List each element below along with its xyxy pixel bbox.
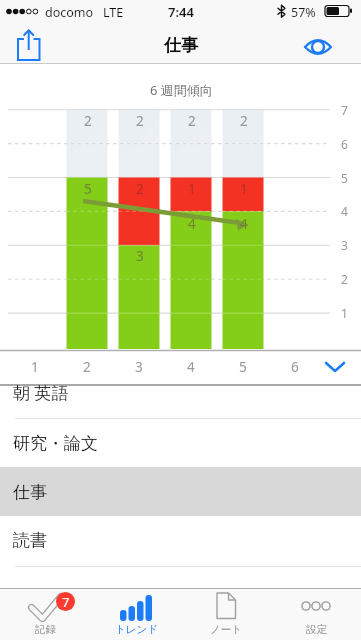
staticText: 7:44: [168, 3, 194, 21]
staticText: 4: [187, 358, 195, 376]
staticText: ノート: [210, 623, 242, 636]
staticText: 1: [341, 305, 348, 321]
button[interactable]: 朝 英語: [0, 370, 361, 414]
staticText: 朝 英語: [13, 381, 69, 404]
staticText: 設定: [306, 623, 327, 636]
staticText: 4: [240, 215, 248, 233]
staticText: 記録: [35, 623, 56, 636]
button[interactable]: [320, 355, 350, 379]
button[interactable]: 7: [0, 589, 90, 640]
button[interactable]: 読書: [0, 518, 361, 562]
staticText: 3: [341, 237, 348, 253]
staticText: 2: [136, 112, 144, 130]
button[interactable]: トレンド: [90, 589, 181, 640]
staticText: 3: [136, 247, 144, 265]
staticText: 2: [84, 112, 92, 130]
staticText: 6: [291, 358, 299, 376]
staticText: 6 週間傾向: [150, 81, 213, 99]
staticText: docomo: [45, 4, 94, 21]
staticText: 研究・論文: [13, 433, 98, 454]
staticText: 7: [62, 593, 70, 611]
staticText: 仕事: [13, 482, 47, 503]
staticText: 2: [240, 112, 248, 130]
staticText: 3: [135, 358, 143, 376]
staticText: 2: [188, 112, 196, 130]
button[interactable]: 仕事: [0, 470, 361, 514]
staticText: 読書: [13, 530, 47, 551]
staticText: 仕事: [164, 35, 198, 56]
staticText: 7: [341, 102, 348, 118]
staticText: 6: [341, 136, 348, 152]
staticText: 4: [341, 203, 348, 219]
staticText: 1: [240, 180, 248, 198]
button[interactable]: ノート: [181, 589, 271, 640]
staticText: 4: [188, 215, 196, 233]
staticText: LTE: [103, 4, 124, 21]
staticText: 1: [188, 180, 196, 198]
button[interactable]: 設定: [271, 589, 361, 640]
button[interactable]: [300, 31, 340, 61]
staticText: 2: [341, 271, 348, 287]
staticText: 57%: [291, 4, 316, 21]
staticText: 5: [84, 180, 92, 198]
staticText: 2: [136, 180, 144, 198]
staticText: 2: [83, 358, 91, 376]
staticText: トレンド: [115, 623, 158, 636]
staticText: 1: [31, 358, 39, 376]
staticText: 5: [341, 170, 348, 186]
staticText: 5: [239, 358, 247, 376]
button[interactable]: [8, 26, 50, 64]
button[interactable]: 研究・論文: [0, 421, 361, 465]
